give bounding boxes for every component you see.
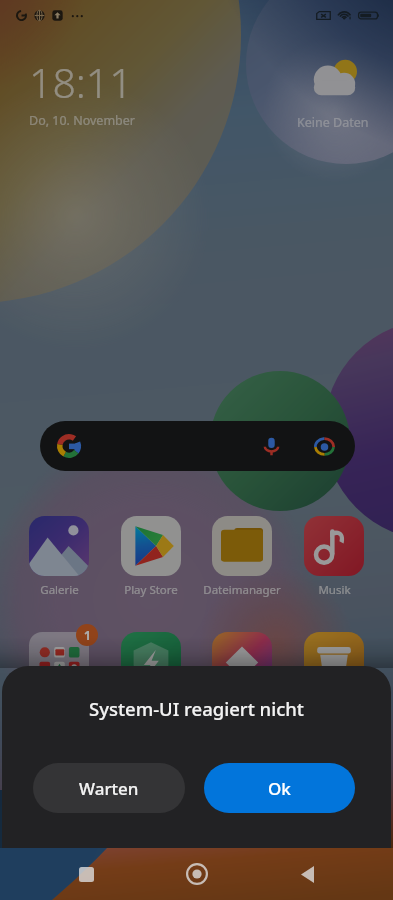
button[interactable]: Recent apps (62, 850, 110, 898)
button[interactable]: Warten (33, 763, 185, 813)
staticText: Ok (268, 777, 291, 800)
staticText: Musik (318, 582, 351, 598)
button[interactable]: Back (283, 850, 331, 898)
button[interactable]: Play Store (107, 516, 195, 598)
staticText: Dateimanager (203, 582, 281, 598)
staticText: Galerie (40, 582, 79, 598)
button[interactable]: Keine Daten (283, 52, 383, 131)
staticText: 18:11 (29, 54, 133, 110)
button[interactable]: 1 (15, 632, 103, 714)
button[interactable]: Musik (290, 516, 378, 598)
staticText: Warten (79, 777, 139, 800)
staticText: Play Store (124, 582, 178, 598)
button[interactable]: Home (173, 850, 221, 898)
button[interactable] (107, 632, 195, 714)
staticText: Do, 10. November (29, 112, 135, 129)
button[interactable] (40, 421, 355, 471)
button[interactable] (198, 632, 286, 714)
button[interactable]: 18:11 (29, 54, 135, 129)
button[interactable] (290, 632, 378, 714)
staticText: Keine Daten (297, 114, 369, 131)
button[interactable]: Ok (204, 763, 355, 813)
button[interactable]: Galerie (15, 516, 103, 598)
button[interactable]: Dateimanager (198, 516, 286, 598)
staticText: 1 (84, 627, 91, 643)
staticText: System-UI reagiert nicht (89, 696, 304, 721)
